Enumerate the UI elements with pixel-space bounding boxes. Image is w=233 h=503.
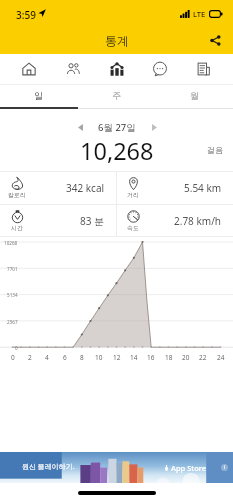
staticText: 주: [112, 90, 121, 101]
button[interactable]: Statistics: [102, 54, 132, 84]
button[interactable]: Advertisement: [0, 452, 233, 483]
staticText: 5.54 km: [184, 181, 222, 195]
staticText: 18: [165, 353, 173, 362]
button[interactable]: Share: [204, 29, 226, 51]
staticText: 10268: [4, 240, 18, 246]
staticText: 20: [182, 353, 190, 362]
staticText: 10: [95, 353, 103, 362]
staticText: 4: [45, 353, 49, 362]
button[interactable]: 주: [77, 84, 155, 110]
staticText: 0: [11, 353, 15, 362]
staticText: 속도: [127, 224, 139, 232]
staticText: 7701: [7, 266, 18, 272]
staticText: 통계: [105, 33, 129, 48]
staticText: 월: [190, 90, 199, 101]
button[interactable]: 시간: [0, 205, 116, 237]
staticText: 칼로리: [8, 191, 26, 199]
button[interactable]: Friends: [58, 54, 88, 84]
staticText: 2567: [7, 319, 18, 325]
staticText: 원신 플레이하기.: [22, 462, 75, 472]
button[interactable]: Home: [14, 54, 44, 84]
staticText: 10,268: [80, 135, 154, 163]
button[interactable]: News: [189, 54, 219, 84]
staticText: 16: [147, 353, 155, 362]
staticText: 2.78 km/h: [174, 214, 222, 228]
button[interactable]: 일: [0, 84, 77, 110]
staticText: 5134: [7, 292, 18, 298]
button[interactable]: Previous day: [72, 119, 88, 135]
staticText: App Store: [171, 463, 207, 473]
staticText: 14: [130, 353, 138, 362]
staticText: 걸음: [207, 145, 223, 155]
button[interactable]: 속도: [116, 205, 233, 237]
staticText: 8: [80, 353, 84, 362]
staticText: 일: [34, 90, 43, 101]
staticText: 22: [199, 353, 207, 362]
staticText: i: [224, 464, 226, 471]
staticText: 83 분: [80, 214, 105, 228]
staticText: 거리: [127, 191, 139, 199]
staticText: 2: [28, 353, 32, 362]
staticText: 6: [63, 353, 67, 362]
button[interactable]: 거리: [116, 171, 233, 204]
button[interactable]: Next day: [146, 119, 162, 135]
staticText: 12: [113, 353, 121, 362]
button[interactable]: 월: [155, 84, 233, 110]
staticText: LTE: [193, 9, 206, 19]
button[interactable]: Chat: [145, 54, 175, 84]
staticText: 시간: [11, 224, 23, 232]
staticText: 6월 27일: [98, 121, 136, 134]
button[interactable]: 칼로리: [0, 171, 116, 204]
staticText: 0: [15, 345, 18, 351]
staticText: 342 kcal: [66, 181, 105, 195]
staticText: 24: [217, 353, 225, 362]
staticText: 3:59: [16, 8, 36, 22]
